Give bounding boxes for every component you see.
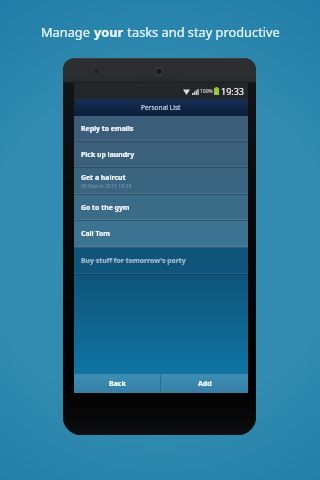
staticText: Buy stuff for tomorrow's party [81, 256, 186, 265]
button[interactable]: Get a haircut [74, 168, 248, 195]
button[interactable]: Add [161, 374, 248, 393]
staticText: 06 March 2015 19:29 [81, 182, 132, 189]
button[interactable]: Pick up laundry [74, 142, 248, 168]
staticText: Add [198, 379, 212, 389]
button[interactable]: Back [74, 374, 160, 393]
staticText: Pick up laundry [81, 150, 135, 159]
staticText: Get a haircut [81, 173, 126, 182]
button[interactable]: Reply to emails [74, 116, 248, 142]
staticText: your [94, 23, 124, 40]
staticText: Reply to emails [81, 124, 134, 133]
staticText: Go to the gym [81, 203, 130, 212]
staticText: 100% [200, 88, 213, 95]
staticText: tasks and stay productive [124, 23, 280, 40]
button[interactable]: Buy stuff for tomorrow's party [74, 248, 248, 275]
button[interactable]: Go to the gym [74, 195, 248, 221]
staticText: Call Tom [81, 229, 110, 238]
button[interactable]: Call Tom [74, 221, 248, 248]
staticText: Manage [41, 23, 94, 40]
staticText: 19:33 [221, 85, 245, 97]
staticText: Personal List [141, 103, 181, 112]
staticText: Back [109, 379, 126, 389]
